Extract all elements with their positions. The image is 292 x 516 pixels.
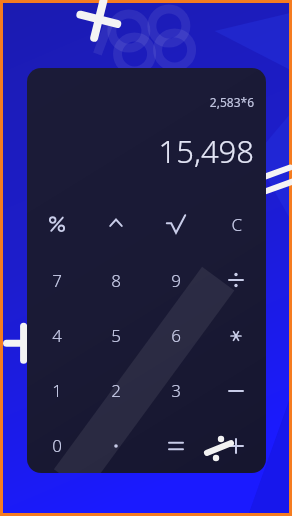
staticText: 2,583*6 — [209, 94, 254, 110]
button[interactable]: Equals — [146, 418, 206, 473]
button[interactable]: C — [206, 196, 266, 252]
other: Minus — [228, 383, 244, 399]
staticText: 2 — [111, 379, 121, 402]
button[interactable]: Divide — [206, 252, 266, 308]
button[interactable]: 4 — [27, 308, 86, 363]
button[interactable]: Power — [86, 196, 146, 252]
other: Plus — [228, 438, 244, 454]
button[interactable]: 6 — [146, 308, 206, 363]
button[interactable]: 7 — [27, 252, 86, 308]
button[interactable]: 1 — [27, 363, 86, 418]
staticText: 5 — [111, 324, 121, 347]
other: Power — [108, 216, 124, 232]
staticText: 7 — [52, 269, 62, 292]
button[interactable]: Multiply — [206, 308, 266, 363]
staticText: 8 — [111, 269, 121, 292]
button[interactable]: Plus — [206, 418, 266, 473]
button[interactable]: Minus — [206, 363, 266, 418]
button[interactable]: 8 — [86, 252, 146, 308]
staticText: 0 — [52, 434, 62, 457]
staticText: 6 — [171, 324, 181, 347]
other: Divide — [228, 272, 244, 288]
button[interactable]: Square root — [146, 196, 206, 252]
button[interactable]: 5 — [86, 308, 146, 363]
button[interactable]: 2 — [86, 363, 146, 418]
staticText: 1 — [52, 379, 62, 402]
other: Equals — [168, 438, 184, 454]
other: Decimal point — [112, 442, 120, 450]
staticText: 4 — [52, 324, 62, 347]
other: Multiply — [230, 330, 242, 342]
button[interactable]: Decimal point — [86, 418, 146, 473]
other: Percent — [48, 215, 66, 233]
staticText: 15,498 — [158, 130, 254, 172]
button[interactable]: 9 — [146, 252, 206, 308]
button[interactable]: 0 — [27, 418, 86, 473]
staticText: 3 — [171, 379, 181, 402]
button[interactable]: 3 — [146, 363, 206, 418]
button[interactable]: Percent — [27, 196, 86, 252]
other: Square root — [166, 214, 186, 234]
staticText: C — [231, 213, 242, 236]
staticText: 9 — [171, 269, 181, 292]
